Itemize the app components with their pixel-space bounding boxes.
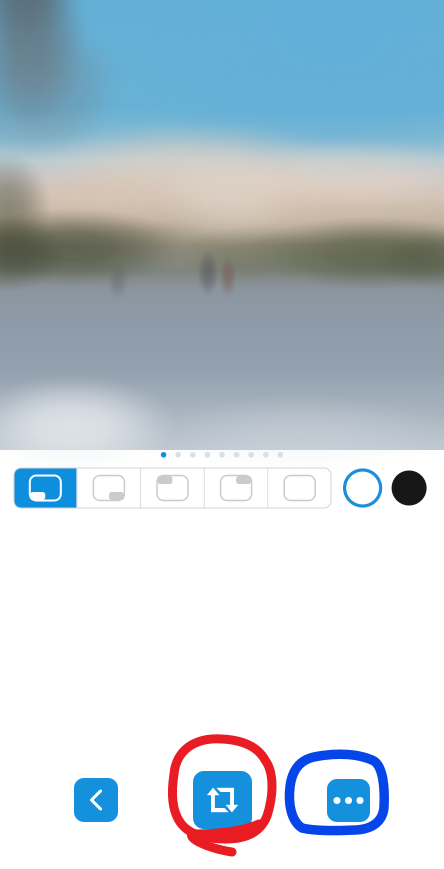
button[interactable]: Bubble style 3 bbox=[78, 468, 140, 508]
button[interactable]: Rotate bbox=[193, 771, 252, 829]
button[interactable]: More options bbox=[327, 779, 370, 822]
button[interactable]: Back bbox=[74, 778, 118, 822]
button[interactable]: Black colour bbox=[392, 470, 427, 505]
button[interactable]: White colour bbox=[345, 470, 381, 506]
button[interactable]: Bubble style 5 bbox=[205, 468, 267, 508]
button[interactable]: Bubble style 4 bbox=[141, 468, 204, 508]
button[interactable]: Bubble style 2 bbox=[14, 468, 77, 508]
button[interactable]: Bubble style 1 bbox=[268, 468, 331, 508]
